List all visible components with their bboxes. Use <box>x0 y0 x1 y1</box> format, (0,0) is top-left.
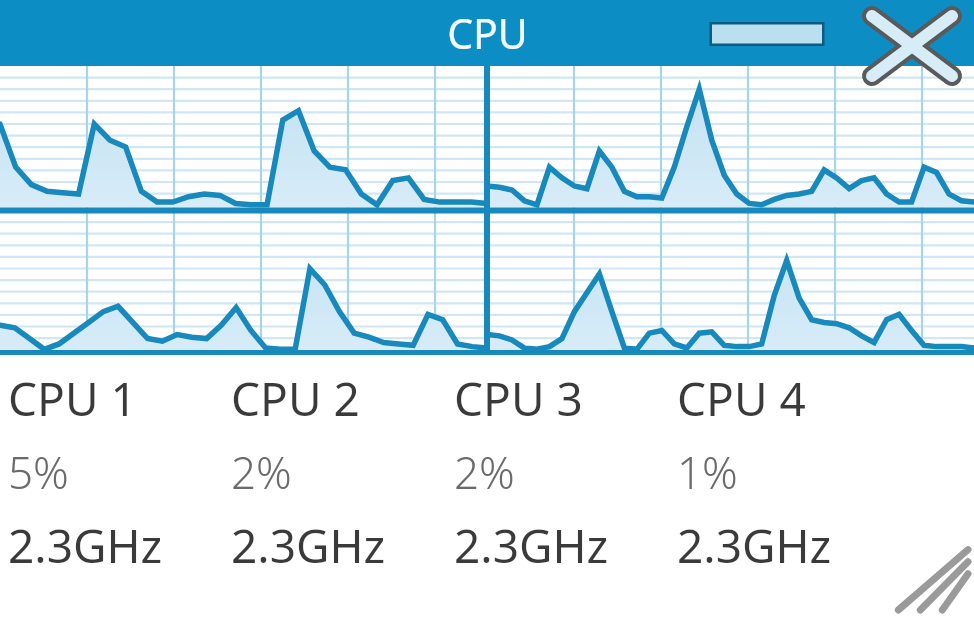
button[interactable]: CPU 1 <box>8 367 218 607</box>
staticText: 2.3GHz <box>677 514 832 577</box>
staticText: CPU 2 <box>231 367 360 430</box>
button[interactable]: CPU 3 <box>454 367 664 607</box>
staticText: CPU 3 <box>454 367 583 430</box>
button[interactable]: CPU 2 <box>231 367 441 607</box>
button[interactable]: Minimize <box>700 14 840 54</box>
staticText: 2% <box>454 442 515 502</box>
staticText: 2.3GHz <box>8 514 163 577</box>
button[interactable]: Close <box>858 2 966 90</box>
staticText: CPU 4 <box>677 367 806 430</box>
staticText: 5% <box>8 442 69 502</box>
staticText: 2% <box>231 442 292 502</box>
staticText: 2.3GHz <box>231 514 386 577</box>
staticText: CPU <box>447 5 528 61</box>
staticText: 1% <box>677 442 738 502</box>
button[interactable]: CPU 4 <box>677 367 887 607</box>
staticText: CPU 1 <box>8 367 137 430</box>
staticText: 2.3GHz <box>454 514 609 577</box>
button[interactable]: Resize <box>888 542 974 618</box>
